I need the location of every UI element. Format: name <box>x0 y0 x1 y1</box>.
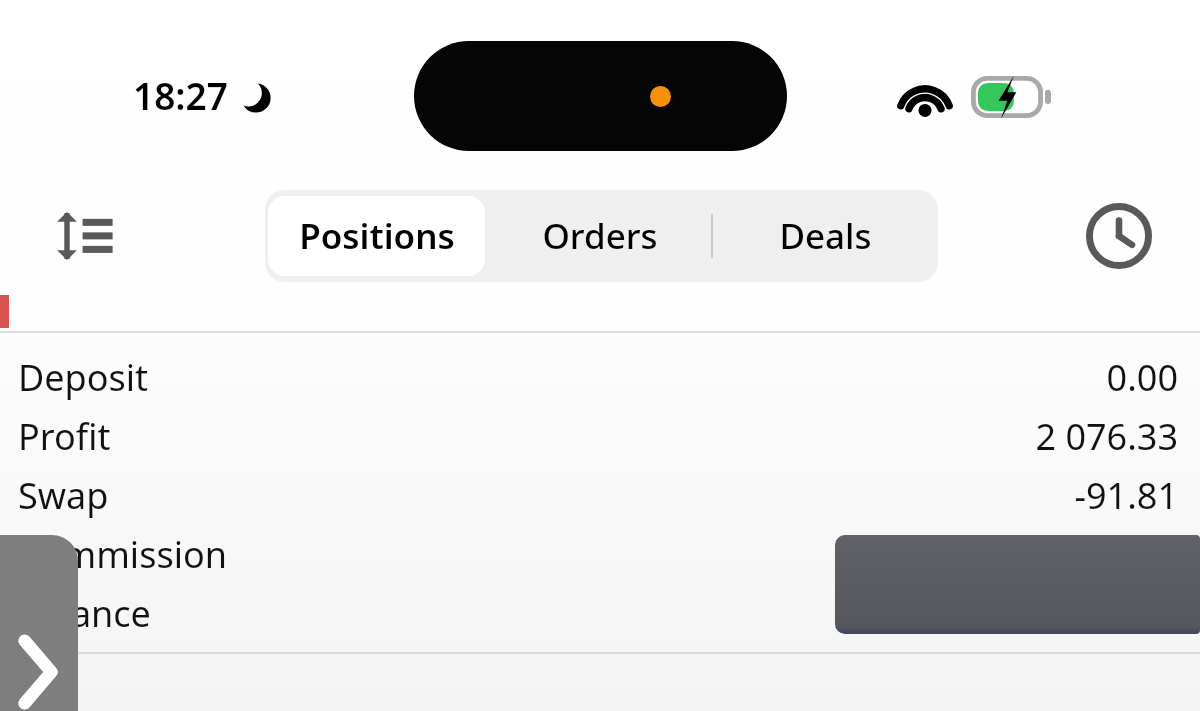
staticText: Swap <box>18 471 109 520</box>
button[interactable]: Swap <box>0 470 1200 529</box>
staticText: Positions <box>299 212 455 260</box>
button[interactable]: Orders <box>488 190 712 282</box>
staticText: Commission <box>18 530 227 579</box>
staticText: 2 076.33 <box>0 412 1178 461</box>
button[interactable]: Sort <box>46 200 124 272</box>
button[interactable]: Commission <box>0 529 1200 588</box>
staticText: Balance <box>18 589 151 638</box>
staticText: -271.44 <box>0 530 1178 579</box>
staticText: -91.81 <box>0 471 1178 520</box>
button[interactable]: Open panel <box>0 535 78 711</box>
button[interactable]: Positions <box>265 190 488 282</box>
staticText: 9 713.08 <box>0 589 1178 638</box>
staticText: Deals <box>779 212 872 260</box>
button[interactable]: Profit <box>0 411 1200 470</box>
staticText: Deposit <box>18 353 149 402</box>
button[interactable]: Deals <box>712 190 938 282</box>
button[interactable]: History <box>1083 200 1155 272</box>
staticText: Orders <box>542 212 658 260</box>
other: Battery charging <box>971 76 1051 118</box>
staticText: 18:27 <box>133 70 228 120</box>
staticText: Profit <box>18 412 111 461</box>
button[interactable]: Deposit <box>0 352 1200 411</box>
button[interactable]: Balance <box>0 588 1200 647</box>
other: Wi-Fi <box>897 76 953 118</box>
staticText: 0.00 <box>0 353 1178 402</box>
